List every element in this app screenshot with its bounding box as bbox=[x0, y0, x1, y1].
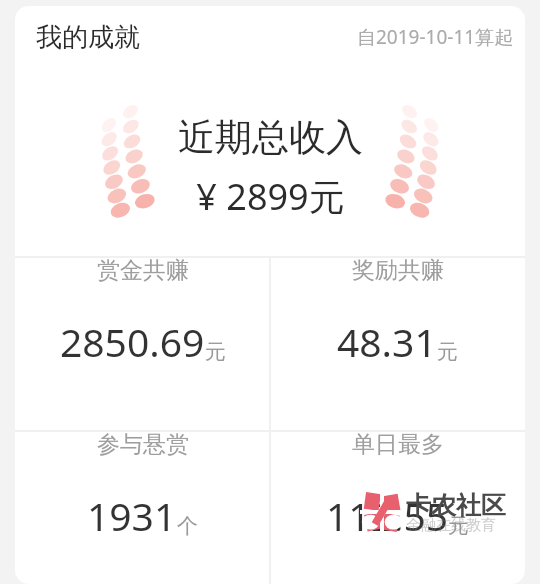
button[interactable]: 参与悬赏 bbox=[15, 430, 270, 542]
staticText: 近期总收入 bbox=[178, 114, 363, 161]
staticText: ¥ 2899元 bbox=[196, 172, 345, 221]
staticText: 2850.69 bbox=[60, 315, 205, 368]
staticText: 金融在线教育 bbox=[406, 516, 496, 535]
staticText: 元 bbox=[205, 339, 226, 365]
button[interactable]: 单日最多 bbox=[270, 430, 525, 542]
staticText: 112.55 bbox=[326, 489, 448, 542]
staticText: 1931 bbox=[87, 489, 177, 542]
staticText: 奖励共赚 bbox=[352, 256, 444, 285]
staticText: 48.31 bbox=[337, 315, 437, 368]
staticText: 赏金共赚 bbox=[97, 256, 189, 285]
staticText: 自2019-10-11算起 bbox=[357, 24, 514, 50]
staticText: 卡农社区 bbox=[406, 490, 506, 521]
staticText: 元 bbox=[448, 513, 469, 539]
button[interactable]: 奖励共赚 bbox=[270, 256, 525, 368]
staticText: 个 bbox=[177, 513, 198, 539]
staticText: 元 bbox=[437, 339, 458, 365]
staticText: 参与悬赏 bbox=[97, 430, 189, 459]
staticText: 我的成就 bbox=[36, 21, 140, 54]
staticText: 单日最多 bbox=[352, 430, 444, 459]
button[interactable]: 赏金共赚 bbox=[15, 256, 270, 368]
